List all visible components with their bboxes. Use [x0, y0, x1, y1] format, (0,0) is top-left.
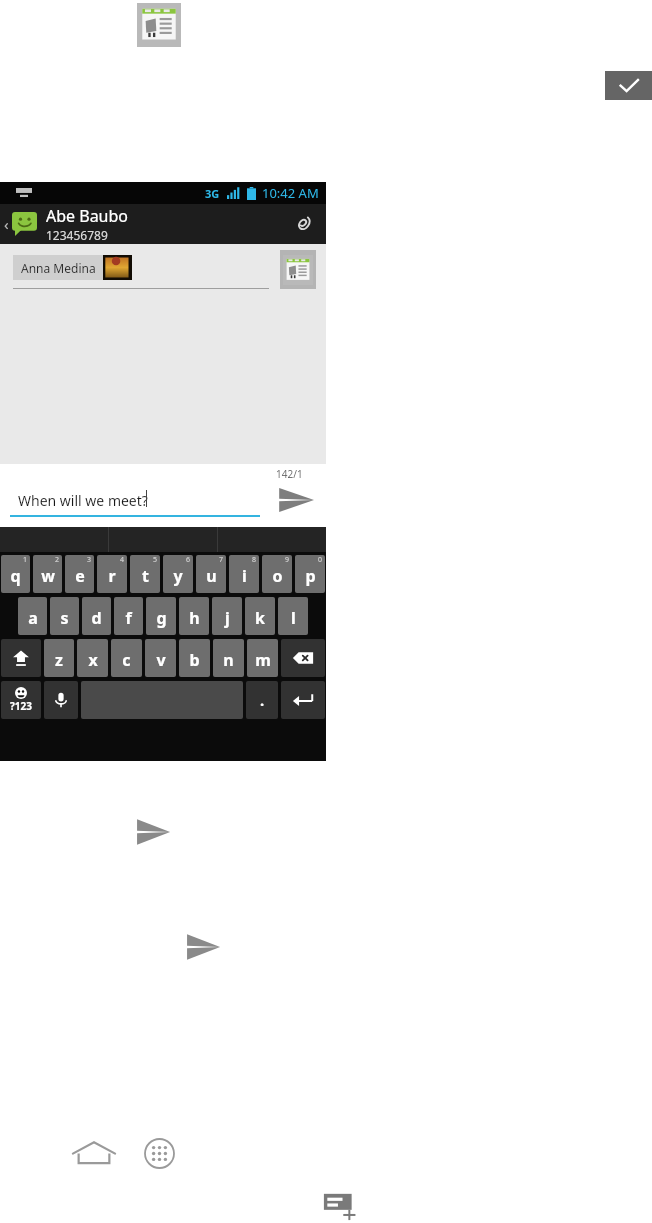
staticText: 7 — [219, 555, 224, 565]
staticText: When will we meet? — [18, 491, 148, 510]
button[interactable]: v — [145, 639, 176, 677]
staticText: ‹ — [4, 214, 9, 234]
staticText: p — [305, 565, 316, 587]
staticText: 1 — [23, 555, 28, 565]
staticText: 9 — [285, 555, 290, 565]
staticText: x — [88, 649, 98, 671]
button[interactable]: s — [50, 597, 79, 635]
staticText: . — [260, 690, 265, 710]
button[interactable]: a — [18, 597, 47, 635]
button[interactable]: h — [179, 597, 209, 635]
staticText: c — [122, 649, 131, 671]
staticText: 2 — [55, 555, 60, 565]
staticText: w — [41, 565, 55, 587]
staticText: v — [156, 649, 166, 671]
button[interactable]: f — [114, 597, 143, 635]
button[interactable]: 3 — [65, 555, 94, 593]
button[interactable]: Send — [134, 816, 172, 848]
staticText: Abe Baubo — [46, 205, 129, 227]
staticText: a — [28, 607, 38, 629]
staticText: ?123 — [10, 699, 32, 713]
staticText: 3 — [87, 555, 92, 565]
staticText: d — [91, 607, 102, 629]
button[interactable]: Attach — [280, 204, 326, 244]
staticText: y — [173, 565, 183, 587]
button[interactable]: c — [111, 639, 142, 677]
button[interactable]: 2 — [33, 555, 62, 593]
staticText: 4 — [120, 555, 125, 565]
staticText: t — [142, 565, 149, 587]
button[interactable]: j — [212, 597, 242, 635]
button[interactable]: 7 — [196, 555, 226, 593]
staticText: z — [55, 649, 63, 671]
button[interactable]: Enter — [281, 681, 325, 719]
staticText: j — [225, 607, 230, 629]
button[interactable]: d — [82, 597, 111, 635]
button[interactable]: 8 — [229, 555, 259, 593]
staticText: n — [223, 649, 234, 671]
button[interactable]: 1 — [1, 555, 30, 593]
button[interactable]: g — [146, 597, 176, 635]
button[interactable]: Home — [70, 1138, 118, 1168]
staticText: s — [60, 607, 69, 629]
staticText: g — [156, 607, 167, 629]
staticText: 10:42 AM — [262, 184, 319, 202]
staticText: i — [242, 565, 247, 587]
button[interactable]: l — [278, 597, 308, 635]
button[interactable]: Symbols — [1, 681, 41, 719]
staticText: 123456789 — [46, 227, 108, 243]
staticText: o — [272, 565, 283, 587]
button[interactable]: z — [44, 639, 74, 677]
button[interactable]: Back — [0, 204, 12, 244]
button[interactable]: 5 — [130, 555, 160, 593]
staticText: 0 — [318, 555, 323, 565]
button[interactable]: 6 — [163, 555, 193, 593]
button[interactable]: All apps — [144, 1138, 175, 1169]
staticText: k — [255, 607, 265, 629]
staticText: e — [75, 565, 85, 587]
button[interactable]: 9 — [262, 555, 292, 593]
button[interactable]: Backspace — [281, 639, 325, 677]
button[interactable]: Shift — [1, 639, 41, 677]
staticText: 6 — [186, 555, 191, 565]
staticText: h — [189, 607, 200, 629]
button[interactable]: . — [246, 681, 278, 719]
staticText: u — [206, 565, 217, 587]
staticText: 5 — [153, 555, 158, 565]
staticText: r — [108, 565, 116, 587]
button[interactable]: Confirm — [605, 71, 652, 100]
button[interactable]: n — [213, 639, 244, 677]
button[interactable]: k — [245, 597, 275, 635]
staticText: l — [291, 607, 296, 629]
button[interactable]: 0 — [295, 555, 325, 593]
staticText: f — [125, 607, 132, 629]
staticText: 3G — [205, 186, 220, 201]
button[interactable]: 4 — [97, 555, 127, 593]
button[interactable]: Send — [276, 485, 316, 515]
button[interactable]: Send — [184, 931, 222, 963]
staticText: 142/1 — [276, 467, 303, 481]
staticText: b — [189, 649, 200, 671]
staticText: Anna Medina — [21, 260, 96, 276]
button[interactable]: New message — [322, 1190, 360, 1222]
button[interactable]: x — [77, 639, 108, 677]
staticText: m — [255, 649, 271, 671]
staticText: q — [10, 565, 21, 587]
button[interactable]: b — [179, 639, 210, 677]
button[interactable]: Insert slide — [280, 250, 316, 289]
button[interactable]: Voice input — [44, 681, 78, 719]
button[interactable]: m — [247, 639, 278, 677]
button[interactable]: Anna Medina — [13, 255, 132, 280]
staticText: 8 — [252, 555, 257, 565]
